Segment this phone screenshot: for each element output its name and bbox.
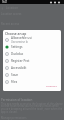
staticText: Recent access [1, 22, 20, 26]
button[interactable]: Settings [3, 43, 61, 50]
staticText: Files [11, 80, 18, 84]
staticText: Soun [11, 73, 19, 77]
button[interactable]: Soun [3, 71, 61, 78]
button[interactable]: Files [3, 78, 61, 85]
staticText: Allow while usi [11, 36, 32, 40]
staticText: Accessibilit [11, 66, 27, 70]
staticText: 9:41 [2, 0, 8, 4]
button[interactable]: Register Prot [3, 57, 61, 64]
staticText: Duckduc [11, 52, 24, 56]
button[interactable]: Duckduc [3, 50, 61, 57]
button[interactable]: Allow while usi [3, 36, 61, 43]
staticText: Manage permissions [1, 116, 27, 120]
button[interactable]: Accessibilit [3, 64, 61, 71]
staticText: Choose an ap [5, 31, 27, 35]
button[interactable]: CANCEL [45, 85, 59, 88]
staticText: Use precise lo [11, 40, 28, 43]
staticText: This app needs access to the location of… [1, 102, 63, 114]
staticText: Location access [1, 12, 22, 16]
staticText: CANCEL [46, 86, 58, 87]
staticText: Register Prot [11, 59, 30, 63]
staticText: Permission of location [1, 98, 33, 102]
staticText: Settings [11, 45, 23, 49]
button[interactable]: Manage permissions [0, 116, 64, 120]
staticText: Location [6, 6, 19, 10]
